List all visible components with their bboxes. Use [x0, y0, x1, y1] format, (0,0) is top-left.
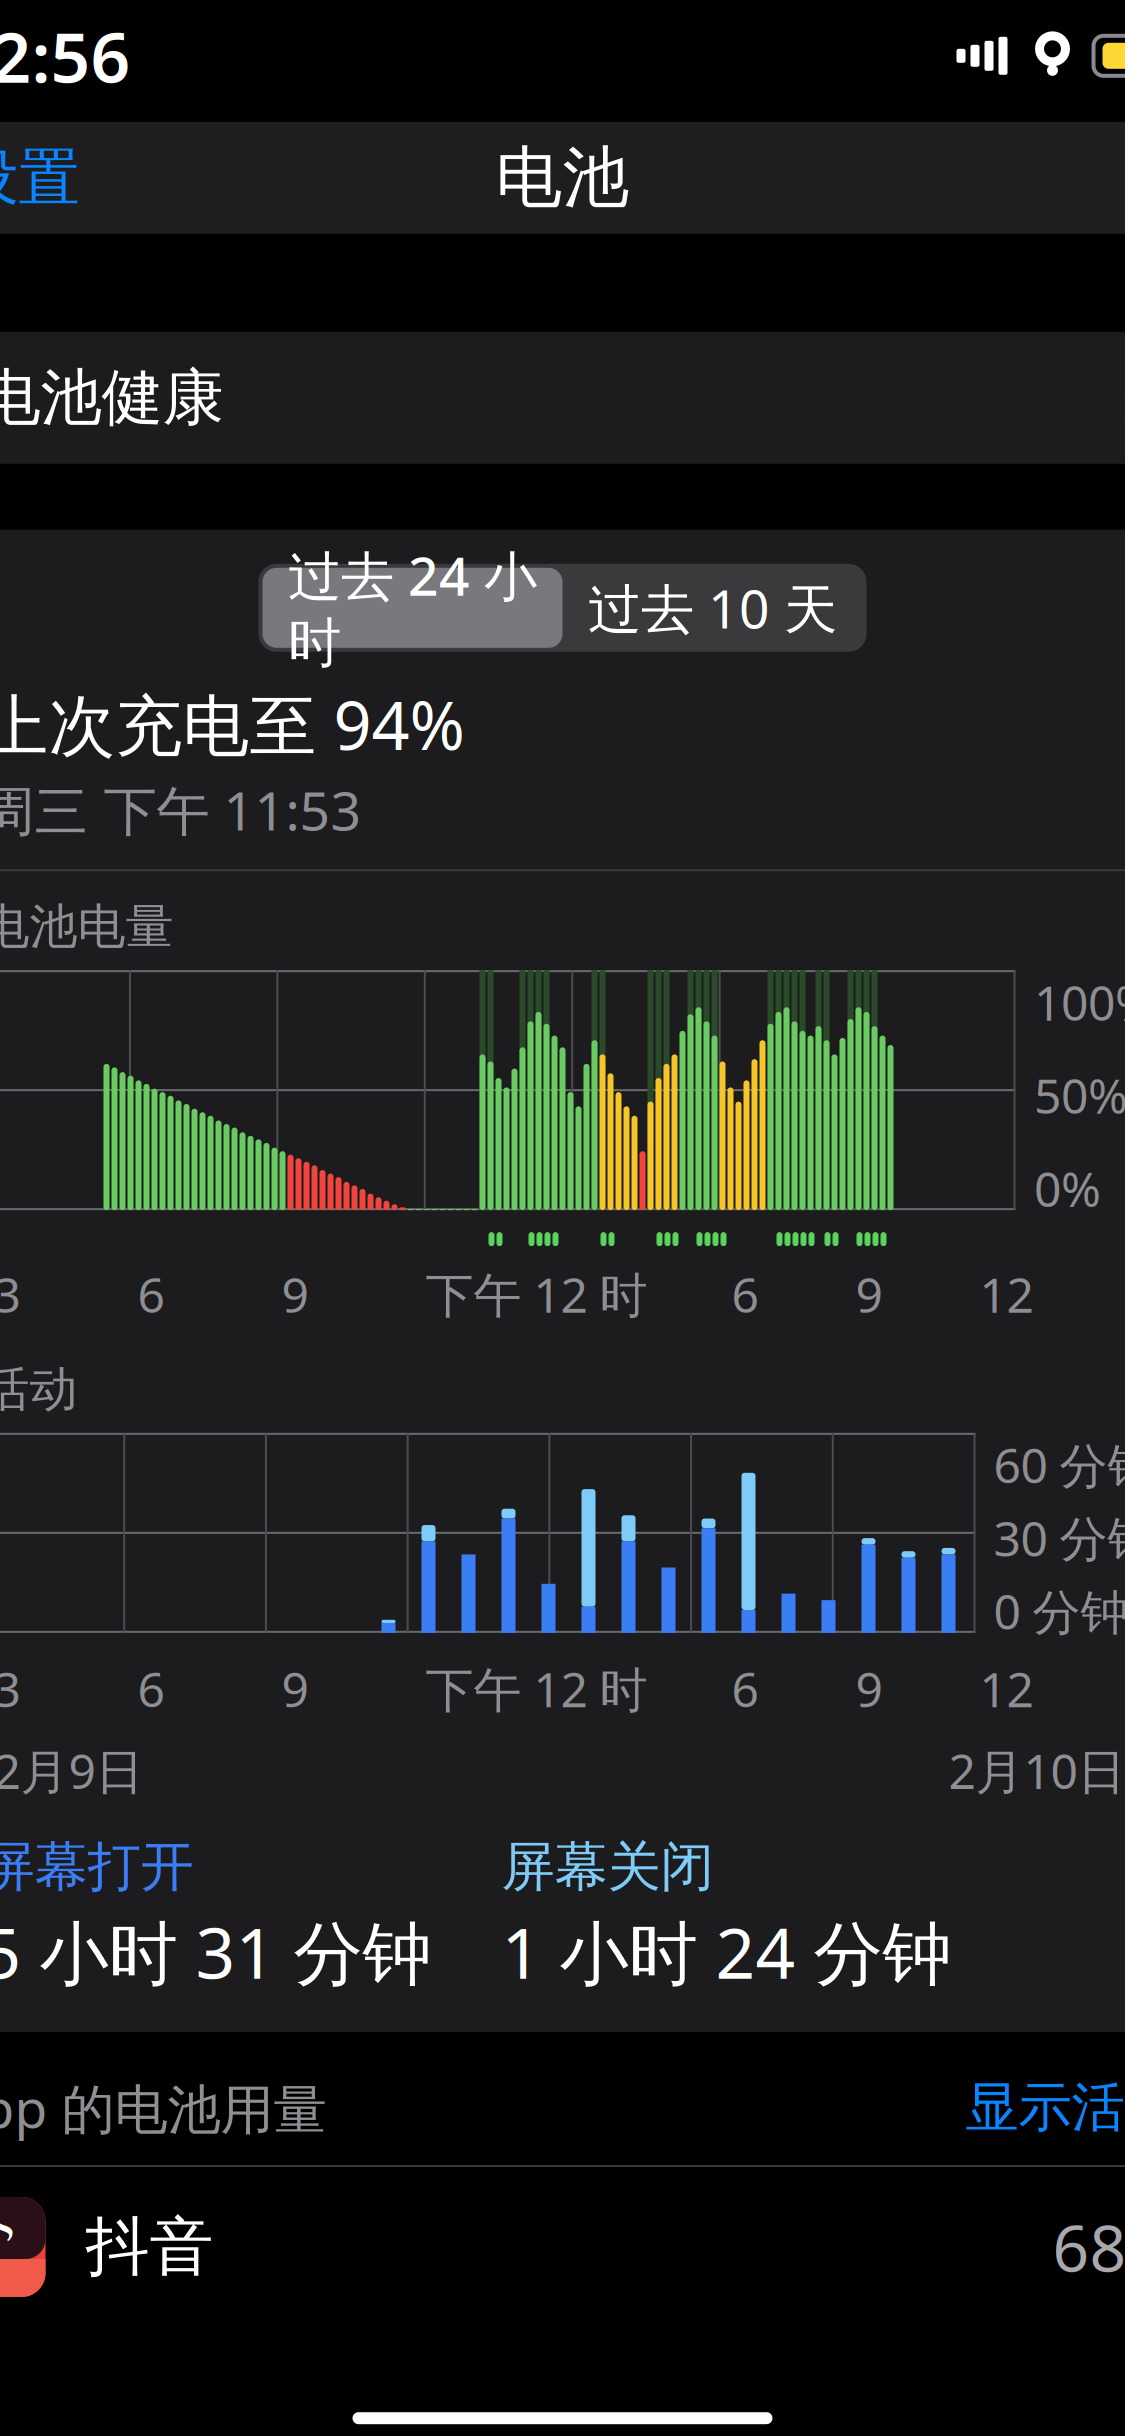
staticText: 6	[731, 1657, 758, 1720]
staticText: 6	[137, 1262, 164, 1326]
staticText: 3	[0, 1262, 20, 1326]
staticText: 68%	[1052, 2204, 1125, 2289]
staticText: 上次充电至 94%	[0, 680, 464, 768]
staticText: 电池	[495, 137, 629, 219]
staticText: 9	[281, 1262, 308, 1326]
button[interactable]: ♪	[0, 2167, 1125, 2327]
staticText: 过去 10 天	[588, 572, 837, 643]
button[interactable]: 电池健康	[0, 332, 1125, 464]
staticText: 9	[855, 1657, 882, 1720]
staticText: 100%	[1034, 970, 1125, 1034]
staticText: 设置	[0, 140, 79, 215]
staticText: 0%	[1034, 1156, 1101, 1220]
staticText: 0 分钟	[993, 1579, 1125, 1643]
staticText: 12:56	[0, 10, 130, 102]
staticText: 6	[137, 1657, 164, 1720]
staticText: 抖音	[85, 2208, 213, 2286]
staticText: 12	[979, 1262, 1033, 1326]
staticText: 电池电量	[0, 897, 173, 956]
staticText: 3	[0, 1657, 20, 1720]
staticText: 下午 12 时	[425, 1657, 647, 1720]
staticText: 50%	[1034, 1063, 1125, 1127]
staticText: 9	[281, 1657, 308, 1720]
staticText: 5 小时 31 分钟	[0, 1906, 431, 1998]
staticText: 1 小时 24 分钟	[501, 1906, 951, 1998]
staticText: 过去 24 小时	[288, 540, 537, 676]
staticText: 电池健康	[0, 360, 223, 435]
staticText: 屏幕关闭	[501, 1834, 713, 1900]
staticText: 6	[731, 1262, 758, 1326]
button[interactable]: 过去 10 天	[562, 568, 862, 648]
staticText: 周三 下午 11:53	[0, 774, 361, 845]
staticText: 下午 12 时	[425, 1262, 647, 1326]
staticText: App 的电池用量	[0, 2072, 326, 2143]
staticText: 活动	[0, 1360, 77, 1419]
staticText: 12	[979, 1657, 1033, 1720]
button[interactable]: 过去 24 小时	[262, 568, 562, 648]
staticText: 屏幕打开	[0, 1834, 193, 1900]
staticText: ♪	[0, 2206, 18, 2288]
staticText: 2月10日	[948, 1739, 1125, 1802]
button[interactable]: 显示活动	[965, 2075, 1125, 2140]
staticText: 9	[855, 1262, 882, 1326]
staticText: 60 分钟	[993, 1433, 1125, 1496]
staticText: ›	[1121, 348, 1125, 447]
staticText: 30 分钟	[993, 1506, 1125, 1570]
button[interactable]: ‹	[0, 123, 101, 233]
staticText: 显示活动	[965, 2075, 1125, 2140]
staticText: 2月9日	[0, 1739, 143, 1802]
